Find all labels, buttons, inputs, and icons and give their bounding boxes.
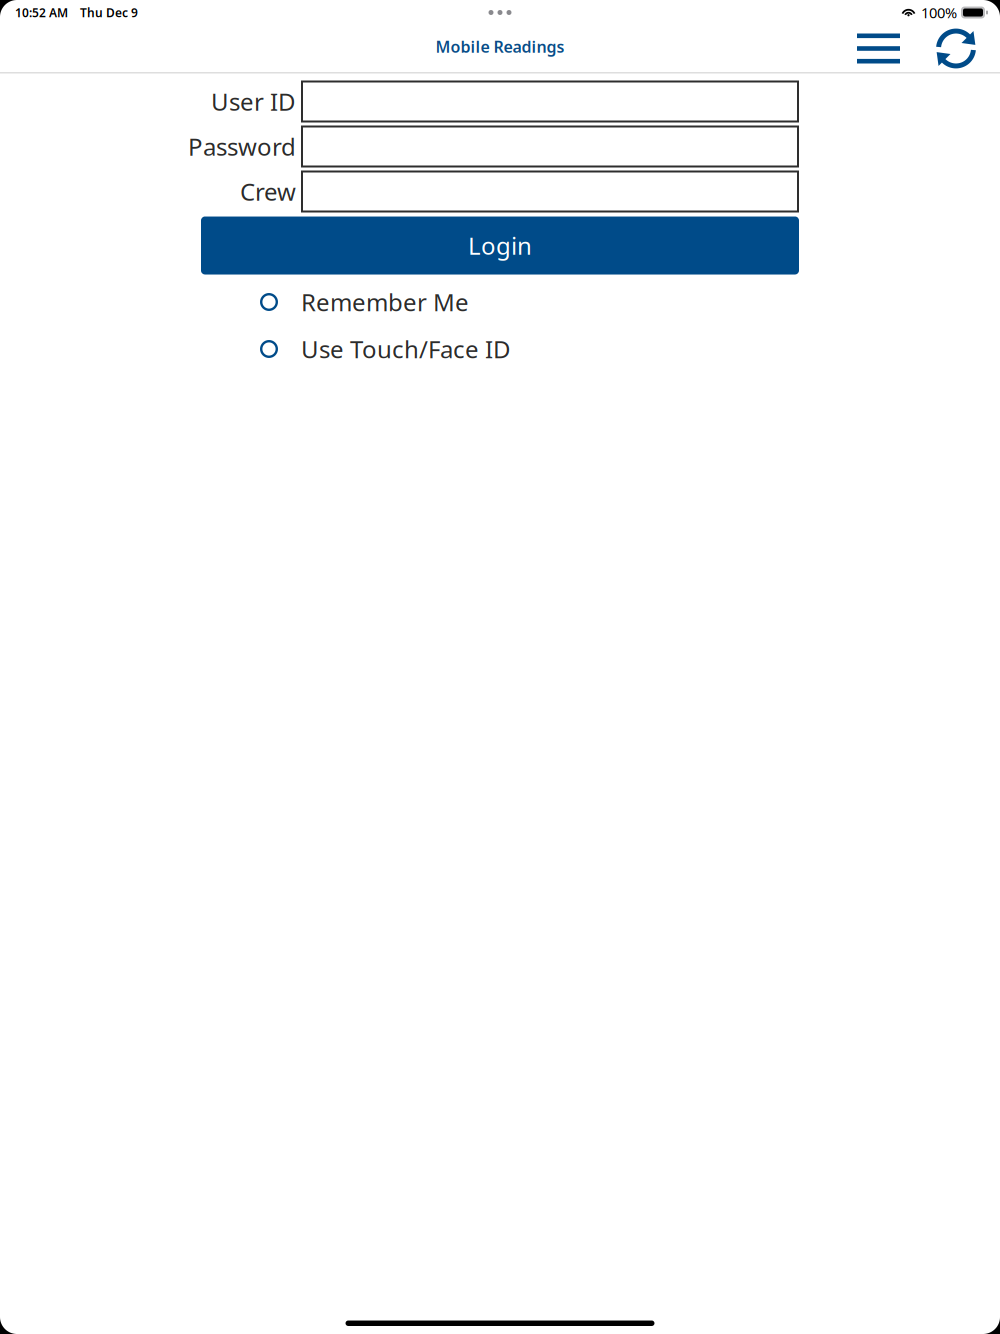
staticText: Use Touch/Face ID <box>301 333 511 365</box>
staticText: Login <box>468 230 532 261</box>
staticText: Remember Me <box>301 286 469 318</box>
button[interactable]: Crew <box>302 171 798 211</box>
staticText: 100% <box>921 3 957 22</box>
button[interactable]: Remember Me <box>0 278 1000 325</box>
staticText: Mobile Readings <box>435 36 564 57</box>
staticText: Crew <box>240 176 296 207</box>
staticText: Thu Dec 9 <box>80 4 138 20</box>
button[interactable]: User ID <box>302 81 798 121</box>
staticText: User ID <box>211 86 296 117</box>
button[interactable]: Refresh <box>934 26 978 70</box>
staticText: 10:52 AM <box>15 4 68 20</box>
staticText: Password <box>188 131 296 162</box>
button[interactable]: Password <box>302 126 798 166</box>
button[interactable]: Menu <box>851 26 906 70</box>
button[interactable]: Login <box>201 216 799 274</box>
button[interactable]: Use Touch/Face ID <box>0 325 1000 372</box>
